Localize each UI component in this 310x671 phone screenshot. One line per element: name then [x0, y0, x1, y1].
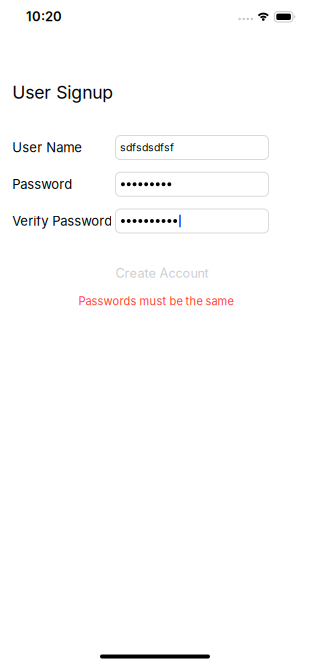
button[interactable]: Verify Password: [115, 209, 268, 233]
staticText: Verify Password: [12, 213, 112, 229]
button[interactable]: Password: [115, 172, 268, 196]
staticText: Create Account: [115, 265, 208, 281]
staticText: User Name: [12, 140, 82, 155]
staticText: Passwords must be the same: [78, 295, 233, 308]
staticText: Password: [12, 176, 72, 192]
button[interactable]: Create Account: [115, 265, 208, 281]
staticText: 10:20: [26, 9, 62, 24]
staticText: sdfsdsdfsf: [120, 141, 174, 154]
button[interactable]: User Name: [115, 135, 268, 159]
staticText: User Signup: [12, 82, 113, 103]
